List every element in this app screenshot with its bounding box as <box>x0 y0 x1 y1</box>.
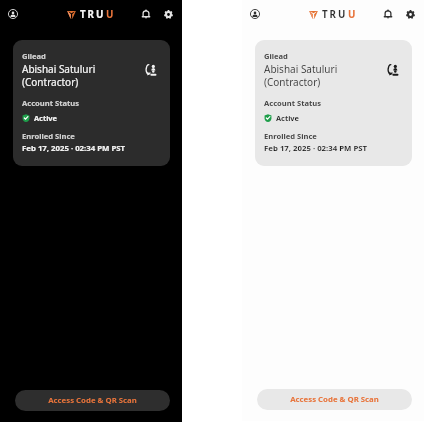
button[interactable]: Settings <box>406 10 415 19</box>
button[interactable]: Notifications <box>384 9 392 19</box>
staticText: TRU <box>80 8 106 21</box>
staticText: Account Status <box>22 98 80 108</box>
button[interactable]: Access Code & QR Scan <box>15 390 170 411</box>
staticText: Account Status <box>264 98 322 108</box>
button[interactable]: Access Code & QR Scan <box>257 389 412 410</box>
staticText: U <box>348 8 358 21</box>
staticText: Active <box>34 113 57 123</box>
button[interactable]: Profile <box>8 9 18 19</box>
button[interactable]: Switch account <box>146 64 156 76</box>
staticText: Gilead <box>22 51 46 61</box>
staticText: Abishai Satuluri (Contractor) <box>22 62 96 89</box>
button[interactable]: Gilead <box>13 40 170 166</box>
staticText: Enrolled Since <box>264 131 317 141</box>
button[interactable]: Gilead <box>255 40 412 166</box>
button[interactable]: Settings <box>164 10 173 19</box>
staticText: Feb 17, 2025 · 02:34 PM PST <box>22 143 126 154</box>
staticText: TRU <box>322 8 348 21</box>
staticText: Abishai Satuluri (Contractor) <box>264 62 338 89</box>
button[interactable]: Switch account <box>388 64 398 76</box>
staticText: U <box>106 8 116 21</box>
staticText: Active <box>276 113 299 123</box>
staticText: Access Code & QR Scan <box>48 395 137 406</box>
button[interactable]: Notifications <box>142 9 150 19</box>
button[interactable]: Profile <box>250 9 260 19</box>
staticText: Gilead <box>264 51 288 61</box>
staticText: Feb 17, 2025 · 02:34 PM PST <box>264 143 368 154</box>
staticText: Enrolled Since <box>22 131 75 141</box>
staticText: Access Code & QR Scan <box>290 394 379 405</box>
